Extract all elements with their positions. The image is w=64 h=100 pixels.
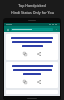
button[interactable]: Copy — [22, 79, 28, 85]
button[interactable]: Copy — [6, 62, 58, 88]
staticText: Hindi Status Only for You — [11, 10, 54, 15]
button[interactable]: Share — [36, 51, 42, 57]
button[interactable]: Copy — [22, 51, 28, 57]
button[interactable]: Share — [36, 79, 42, 85]
button[interactable]: Copy — [6, 34, 58, 60]
button[interactable]: More options — [55, 28, 58, 31]
button[interactable] — [11, 28, 53, 31]
button[interactable]: Menu — [6, 28, 9, 31]
staticText: Top Handpicked — [18, 3, 46, 8]
